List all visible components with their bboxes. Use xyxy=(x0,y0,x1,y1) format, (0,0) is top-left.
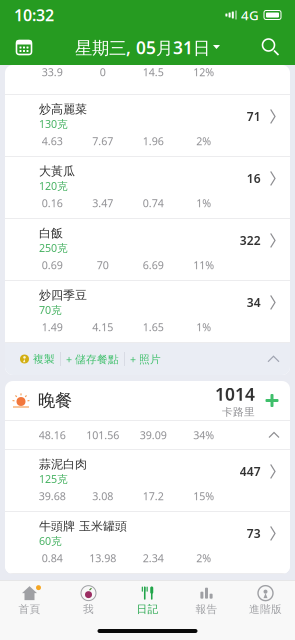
staticText: 0.84 xyxy=(42,551,63,565)
staticText: 2% xyxy=(196,134,211,148)
staticText: 34% xyxy=(193,428,214,442)
staticText: 大黃瓜 xyxy=(39,164,75,179)
button[interactable]: 複製 xyxy=(5,343,60,375)
button[interactable]: Add food xyxy=(261,389,283,411)
staticText: 2% xyxy=(196,551,211,565)
staticText: 250克 xyxy=(39,241,68,255)
staticText: 6.69 xyxy=(143,258,164,272)
staticText: 10:32 xyxy=(14,4,54,26)
button[interactable]: 日記 xyxy=(118,581,177,621)
staticText: 0.74 xyxy=(143,196,164,210)
button[interactable]: 我 xyxy=(59,581,118,621)
staticText: 71 xyxy=(247,108,261,124)
staticText: 322 xyxy=(240,232,261,248)
staticText: 11% xyxy=(193,258,214,272)
staticText: 73 xyxy=(247,525,261,541)
staticText: 34 xyxy=(247,294,261,310)
button[interactable]: Calendar xyxy=(6,30,42,64)
button[interactable]: Collapse xyxy=(269,432,290,437)
staticText: 7.67 xyxy=(92,134,113,148)
staticText: 0.69 xyxy=(42,258,63,272)
staticText: 120克 xyxy=(39,179,68,193)
staticText: 1% xyxy=(196,196,211,210)
button[interactable]: 星期三, 05月31日 xyxy=(75,36,220,59)
button[interactable]: 炒高麗菜 xyxy=(5,95,290,156)
staticText: 60克 xyxy=(39,534,62,548)
staticText: 70克 xyxy=(39,303,62,317)
staticText: 15% xyxy=(193,489,214,503)
staticText: 0 xyxy=(100,65,106,79)
staticText: 卡路里 xyxy=(222,405,255,419)
staticText: 1014 xyxy=(215,382,255,405)
button[interactable]: 大黃瓜 xyxy=(5,157,290,218)
staticText: 17.2 xyxy=(143,489,164,503)
staticText: 炒四季豆 xyxy=(39,288,87,303)
staticText: 33.9 xyxy=(42,65,63,79)
staticText: 12% xyxy=(193,65,214,79)
staticText: 複製 xyxy=(33,352,55,365)
button[interactable]: 牛頭牌 玉米罐頭 xyxy=(5,512,290,573)
button[interactable]: 進階版 xyxy=(236,581,295,621)
staticText: 4G xyxy=(241,6,259,24)
staticText: 4.63 xyxy=(42,134,63,148)
staticText: 報告 xyxy=(195,603,217,616)
button[interactable]: 報告 xyxy=(177,581,236,621)
staticText: 我 xyxy=(83,603,94,616)
staticText: 4.15 xyxy=(92,320,113,334)
button[interactable]: + 儲存餐點 xyxy=(61,343,124,375)
staticText: 3.47 xyxy=(92,196,113,210)
staticText: 晚餐 xyxy=(38,390,72,411)
staticText: 125克 xyxy=(39,472,68,486)
staticText: 39.09 xyxy=(140,428,167,442)
staticText: 70 xyxy=(97,258,109,272)
button[interactable]: Collapse xyxy=(268,343,290,375)
staticText: 3.08 xyxy=(92,489,113,503)
staticText: + 照片 xyxy=(130,352,161,366)
staticText: 炒高麗菜 xyxy=(39,102,87,117)
button[interactable]: 炒四季豆 xyxy=(5,281,290,342)
staticText: 日記 xyxy=(136,603,158,616)
staticText: 白飯 xyxy=(39,226,63,241)
staticText: 16 xyxy=(247,170,261,186)
staticText: 447 xyxy=(240,463,261,479)
staticText: 牛頭牌 玉米罐頭 xyxy=(39,519,127,534)
staticText: 130克 xyxy=(39,117,68,131)
staticText: 1.96 xyxy=(143,134,164,148)
staticText: 48.16 xyxy=(39,428,66,442)
staticText: 星期三, 05月31日 xyxy=(75,36,210,59)
staticText: 13.98 xyxy=(89,551,116,565)
staticText: 1.49 xyxy=(42,320,63,334)
staticText: 2.34 xyxy=(143,551,164,565)
staticText: 1.65 xyxy=(143,320,164,334)
button[interactable]: + 照片 xyxy=(125,343,166,375)
staticText: 39.68 xyxy=(39,489,66,503)
button[interactable]: 白飯 xyxy=(5,219,290,280)
staticText: 首頁 xyxy=(18,603,40,616)
staticText: 101.56 xyxy=(86,428,119,442)
staticText: 0.16 xyxy=(42,196,63,210)
staticText: 進階版 xyxy=(249,603,282,616)
button[interactable]: 蒜泥白肉 xyxy=(5,450,290,511)
button[interactable]: 首頁 xyxy=(0,581,59,621)
staticText: 1% xyxy=(196,320,211,334)
staticText: 蒜泥白肉 xyxy=(39,457,87,472)
button[interactable]: Search xyxy=(253,30,289,64)
staticText: + 儲存餐點 xyxy=(66,352,119,366)
staticText: 14.5 xyxy=(143,65,164,79)
